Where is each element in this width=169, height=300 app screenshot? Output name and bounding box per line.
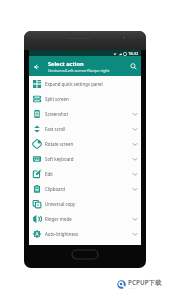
staticText: Screenshot [45, 111, 132, 117]
button[interactable]: Rotate screen [29, 136, 141, 151]
staticText: Select action [48, 60, 84, 68]
staticText: Soft keyboard [45, 156, 132, 162]
button[interactable]: Search [125, 57, 141, 76]
staticText: Fast scroll [45, 126, 132, 132]
staticText: Gestures/Left corner/Swipe right [48, 68, 110, 73]
button[interactable]: Edit [29, 166, 141, 181]
button[interactable]: Screenshot [29, 106, 141, 121]
staticText: Expand quick settings panel [45, 81, 132, 87]
button[interactable]: Split screen [29, 91, 141, 106]
button[interactable]: Expand quick settings panel [29, 76, 141, 91]
button[interactable]: Home [72, 250, 98, 259]
staticText: Edit [45, 171, 132, 177]
staticText: Universal copy [45, 201, 132, 207]
button[interactable]: Ringer mode [29, 211, 141, 226]
staticText: Clipboard [45, 186, 132, 192]
button[interactable]: Back [29, 57, 43, 76]
staticText: Auto-brightness [45, 231, 132, 237]
button[interactable]: Soft keyboard [29, 151, 141, 166]
button[interactable]: Universal copy [29, 196, 141, 211]
staticText: · · · · · · [128, 287, 136, 291]
button[interactable]: Fast scroll [29, 121, 141, 136]
staticText: Split screen [45, 96, 132, 102]
staticText: 18:32 [128, 51, 139, 56]
staticText: Ringer mode [45, 216, 132, 222]
button[interactable]: Clipboard [29, 181, 141, 196]
staticText: Rotate screen [45, 141, 132, 147]
button[interactable]: Auto-brightness [29, 226, 141, 241]
staticText: PCPUP下载 [128, 278, 162, 287]
